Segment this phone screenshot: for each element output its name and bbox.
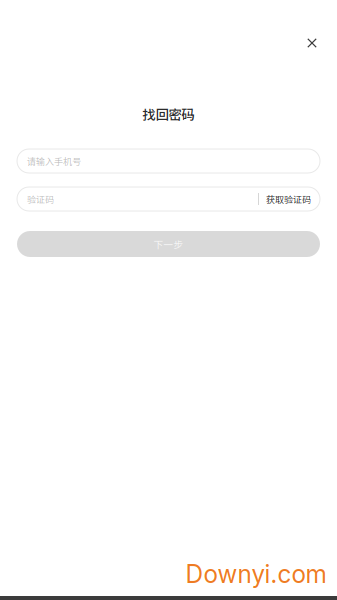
- button[interactable]: 下一步: [17, 231, 320, 257]
- staticText: 获取验证码: [266, 192, 311, 205]
- staticText: 找回密码: [142, 104, 194, 124]
- button[interactable]: Close: [295, 26, 329, 60]
- staticText: 请输入手机号: [27, 154, 81, 167]
- button[interactable]: 获取验证码: [258, 188, 320, 210]
- staticText: 下一步: [153, 237, 183, 251]
- staticText: 验证码: [27, 192, 54, 205]
- staticText: Downyi.com: [185, 559, 326, 589]
